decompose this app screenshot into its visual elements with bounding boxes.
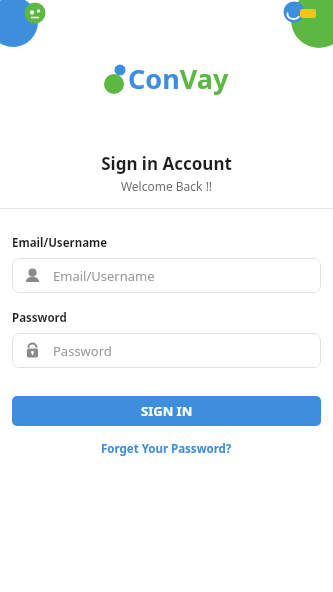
button[interactable]: Email or username field [12, 258, 321, 293]
button[interactable]: Password field [12, 333, 321, 368]
staticText: SIGN IN [141, 402, 193, 420]
button[interactable]: Forget Your Password? [93, 438, 240, 460]
staticText: Password [12, 310, 67, 326]
staticText: Forget Your Password? [101, 441, 232, 457]
staticText: Email/Username [53, 267, 155, 285]
staticText: ConVay [128, 60, 229, 97]
button[interactable]: SIGN IN [12, 396, 321, 426]
staticText: Password [53, 342, 112, 360]
staticText: Sign in Account [0, 152, 333, 175]
staticText: Welcome Back !! [0, 178, 333, 194]
staticText: Email/Username [12, 235, 108, 251]
